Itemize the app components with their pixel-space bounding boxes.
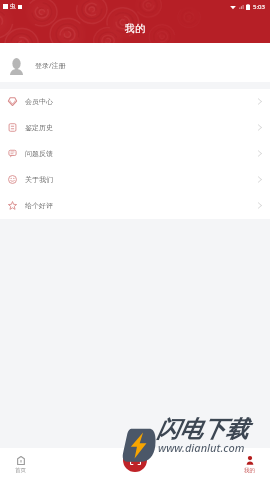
staticText: 会员中心 [25,97,53,106]
button[interactable]: 会员中心 [0,89,270,115]
button[interactable]: 鉴定历史 [0,115,270,141]
button[interactable]: 我的 [232,455,267,475]
staticText: 登录/注册 [35,61,66,71]
staticText: www.dianlut.com [158,440,245,455]
button[interactable]: Scan [123,448,147,472]
button[interactable]: 关于我们 [0,167,270,193]
staticText: 我的 [244,467,255,474]
staticText: 首页 [15,467,26,474]
staticText: 鉴定历史 [25,123,53,132]
staticText: 5:03 [253,3,265,11]
button[interactable]: 问题反馈 [0,141,270,167]
button[interactable]: 给个好评 [0,193,270,219]
staticText: 问题反馈 [25,149,53,158]
staticText: 关于我们 [25,175,53,184]
button[interactable]: 首页 [3,455,38,475]
button[interactable]: 登录/注册 [0,43,270,82]
staticText: 虫 [10,3,16,10]
staticText: 闪电下载 [156,415,248,444]
staticText: 我的 [125,22,145,35]
staticText: 给个好评 [25,201,53,210]
